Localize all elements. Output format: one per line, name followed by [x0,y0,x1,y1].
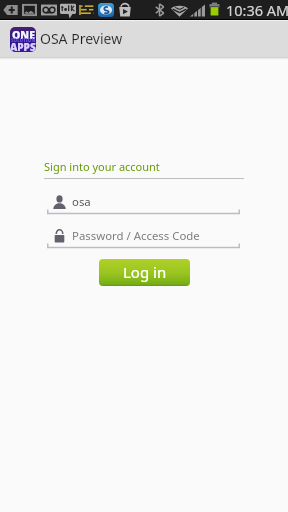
staticText: Log in [123,262,167,282]
other: One Solution Apps logo, navigate home [10,27,36,52]
staticText: APPS [10,40,36,52]
button[interactable]: Password / Access Code [47,226,240,250]
staticText: ONE [12,28,35,42]
staticText: SOLUTION [11,37,36,43]
button[interactable]: One Solution Apps logo, navigate home [0,21,288,57]
staticText: Sign into your account [44,159,160,174]
staticText: 10:36 AM [226,0,288,19]
staticText: OSA Preview [40,29,123,48]
staticText: osa [72,194,91,210]
staticText: Password / Access Code [72,228,200,244]
button[interactable]: Log in [99,259,190,286]
button[interactable]: osa [47,192,240,216]
